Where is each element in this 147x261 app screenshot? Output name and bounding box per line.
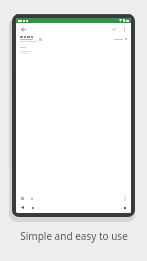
button[interactable]: Back bbox=[19, 25, 27, 33]
button[interactable]: Home bbox=[30, 205, 35, 210]
staticText: Simple and easy to use bbox=[20, 229, 128, 243]
button[interactable] bbox=[20, 36, 127, 42]
button[interactable]: Save bbox=[110, 25, 118, 33]
button[interactable]: Back bbox=[20, 205, 25, 210]
button[interactable]: Scroll bbox=[122, 195, 127, 201]
button[interactable]: Recents bbox=[122, 205, 127, 210]
button[interactable]: More options bbox=[120, 25, 128, 33]
button[interactable]: Format bbox=[20, 196, 25, 201]
button[interactable]: Attach bbox=[29, 196, 34, 201]
